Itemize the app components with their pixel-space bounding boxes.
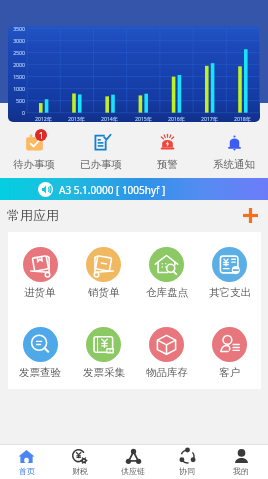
button[interactable]: A3 5.1.0000 [ 1005hyf ] <box>0 178 268 200</box>
staticText: 其它支出 <box>209 286 251 299</box>
staticText: 系统通知 <box>213 158 255 171</box>
staticText: A3 5.1.0000 [ 1005hyf ] <box>59 183 166 197</box>
button[interactable]: 1 <box>2 122 66 178</box>
staticText: 2016年 <box>160 115 193 122</box>
staticText: 1500 <box>8 73 25 80</box>
staticText: 2017年 <box>193 115 226 122</box>
button[interactable]: 发票查验 <box>8 327 72 389</box>
staticText: 财税 <box>72 466 88 476</box>
staticText: 1 <box>39 130 44 141</box>
staticText: 2500 <box>8 49 25 56</box>
staticText: 2012年 <box>27 115 60 122</box>
button[interactable]: 已办事项 <box>69 122 133 178</box>
button[interactable]: Add application <box>240 205 260 225</box>
staticText: 常用应用 <box>7 207 59 223</box>
staticText: 进货单 <box>24 286 56 299</box>
staticText: 1000 <box>8 85 25 92</box>
staticText: 客户 <box>219 366 240 379</box>
staticText: 3000 <box>8 37 25 44</box>
staticText: 0 <box>8 109 25 116</box>
staticText: 已办事项 <box>80 158 122 171</box>
button[interactable]: 物品库存 <box>135 327 198 389</box>
button[interactable]: 财税 <box>53 445 106 479</box>
staticText: 我的 <box>233 466 249 476</box>
staticText: 协同 <box>179 466 195 476</box>
button[interactable]: 首页 <box>0 445 53 479</box>
button[interactable]: 销货单 <box>72 247 135 312</box>
button[interactable]: 系统通知 <box>202 122 266 178</box>
staticText: 发票采集 <box>83 366 125 379</box>
staticText: 预警 <box>157 158 178 171</box>
button[interactable]: 我的 <box>214 445 268 479</box>
button[interactable]: 仓库盘点 <box>135 247 198 312</box>
button[interactable]: 预警 <box>135 122 199 178</box>
staticText: 首页 <box>19 466 35 476</box>
staticText: 待办事项 <box>13 158 55 171</box>
staticText: 500 <box>8 97 25 104</box>
staticText: 销货单 <box>88 286 120 299</box>
button[interactable]: 客户 <box>198 327 261 389</box>
staticText: 仓库盘点 <box>146 286 188 299</box>
button[interactable]: 协同 <box>160 445 214 479</box>
staticText: 3500 <box>8 26 25 32</box>
staticText: 2018年 <box>226 115 259 122</box>
staticText: 2014年 <box>93 115 126 122</box>
staticText: 物品库存 <box>146 366 188 379</box>
staticText: 2000 <box>8 61 25 68</box>
staticText: 2015年 <box>127 115 160 122</box>
button[interactable]: 进货单 <box>8 247 72 312</box>
button[interactable]: 发票采集 <box>72 327 135 389</box>
button[interactable]: 其它支出 <box>198 247 261 312</box>
staticText: 2013年 <box>60 115 93 122</box>
button[interactable]: 供应链 <box>106 445 160 479</box>
staticText: 发票查验 <box>19 366 61 379</box>
staticText: 供应链 <box>121 466 145 476</box>
